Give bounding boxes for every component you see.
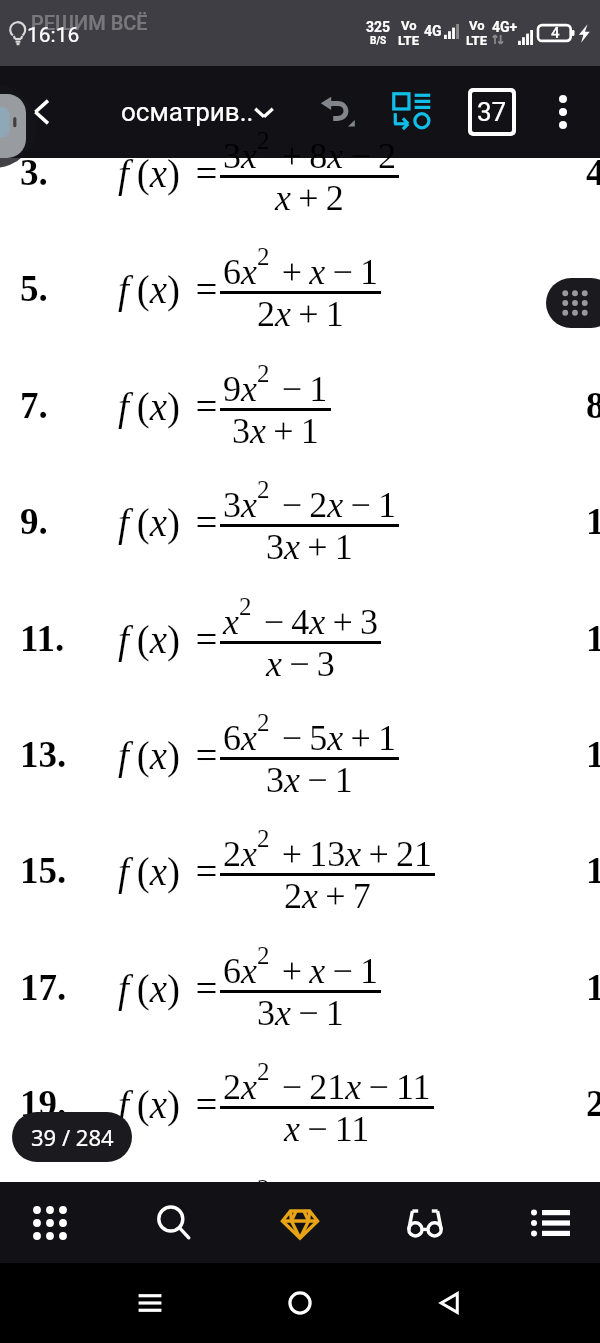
staticText: 6x2 − 5x + 1	[223, 709, 396, 757]
staticText: 3x + 1	[266, 527, 353, 567]
button[interactable]: 39 / 284	[12, 1112, 132, 1162]
button[interactable]: Back	[14, 84, 70, 140]
staticText: 5.	[20, 268, 48, 309]
staticText: 2x2 − 21x − 11	[223, 1058, 431, 1106]
staticText: 4	[551, 24, 560, 42]
staticText: 2x + 7	[284, 876, 371, 916]
staticText: B/S	[370, 35, 387, 47]
staticText: 2x2 + 13x + 21	[223, 825, 432, 873]
staticText: 19.	[20, 1083, 67, 1124]
button[interactable]: Assistive touch	[0, 84, 36, 168]
button[interactable]: More options	[533, 82, 593, 142]
staticText: x − 3	[266, 644, 335, 684]
button[interactable]: Apps	[14, 1187, 86, 1259]
staticText: f (x) =	[118, 967, 218, 1010]
button[interactable]: Search	[138, 1187, 210, 1259]
staticText: 17.	[20, 967, 67, 1008]
staticText: 8	[586, 385, 600, 426]
button[interactable]: Layout mode	[382, 82, 442, 142]
staticText: 3x2 + 5x − 2	[223, 1175, 396, 1223]
staticText: 7.	[20, 385, 48, 426]
staticText: 15.	[20, 850, 67, 891]
staticText: Vo	[469, 18, 485, 33]
staticText: 1	[586, 850, 600, 891]
staticText: x + 2	[275, 178, 344, 218]
staticText: 13.	[20, 734, 67, 775]
staticText: 6x2 + x − 1	[223, 243, 378, 291]
staticText: 2x + 1	[257, 294, 344, 334]
staticText: 3x − 1	[266, 1226, 353, 1266]
staticText: f (x) =	[118, 734, 218, 777]
staticText: f (x) =	[118, 385, 218, 428]
staticText: 37	[477, 97, 507, 127]
staticText: 4G+	[492, 19, 518, 35]
staticText: LTE	[398, 33, 419, 48]
staticText: 6x2 + x − 1	[223, 942, 378, 990]
button[interactable]: осматрив..	[121, 66, 274, 158]
staticText: 3x2 − 2x − 1	[223, 476, 396, 524]
staticText: f (x) =	[118, 618, 218, 661]
button[interactable]: Home	[270, 1273, 330, 1333]
staticText: 21.	[20, 1200, 67, 1241]
button[interactable]: Contents	[514, 1187, 586, 1259]
staticText: 3x + 1	[232, 411, 319, 451]
staticText: f (x) =	[118, 1200, 218, 1243]
staticText: f (x) =	[118, 1083, 218, 1126]
staticText: 1	[586, 734, 600, 775]
button[interactable]: Undo	[310, 82, 370, 142]
staticText: 16:16	[27, 23, 80, 48]
button[interactable]: Tools	[546, 278, 600, 328]
button[interactable]: Reading mode	[389, 1187, 461, 1259]
button[interactable]: Recent apps	[120, 1273, 180, 1333]
staticText: Vo	[401, 18, 417, 33]
staticText: осматрив..	[121, 97, 254, 127]
staticText: 325	[366, 19, 391, 35]
staticText: f (x) =	[118, 501, 218, 544]
staticText: f (x) =	[118, 152, 218, 195]
staticText: 11.	[20, 618, 65, 659]
staticText: 39 / 284	[31, 1122, 114, 1152]
staticText: 1	[586, 501, 600, 542]
staticText: 3x − 1	[266, 760, 353, 800]
staticText: 1	[586, 967, 600, 1008]
staticText: 4G	[424, 23, 442, 39]
staticText: LTE	[466, 33, 487, 48]
button[interactable]: Page 37	[462, 82, 522, 142]
staticText: 3x − 1	[257, 993, 344, 1033]
staticText: РЕШИМ ВСЁ	[31, 11, 148, 34]
staticText: 4	[586, 152, 600, 193]
staticText: 3x2 + 8x − 2	[223, 127, 396, 175]
staticText: 2	[586, 1083, 600, 1124]
staticText: f (x) =	[118, 268, 218, 311]
staticText: 3.	[20, 152, 48, 193]
staticText: x2 − 4x + 3	[223, 593, 378, 641]
staticText: 9.	[20, 501, 48, 542]
staticText: x − 11	[284, 1109, 370, 1149]
button[interactable]: Premium	[264, 1187, 336, 1259]
staticText: 9x2 − 1	[223, 360, 328, 408]
staticText: f (x) =	[118, 850, 218, 893]
staticText: 1	[586, 618, 600, 659]
button[interactable]: Back	[420, 1273, 480, 1333]
